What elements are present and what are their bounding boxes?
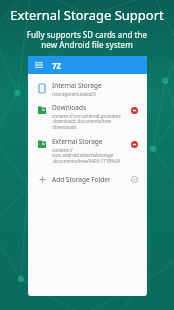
staticText: Fully supports SD cards and the new Andr…: [8, 29, 166, 50]
staticText: Internal Storage: [52, 81, 102, 90]
staticText: /storage/emulated/0: [52, 91, 96, 97]
staticText: 7Z: [52, 60, 62, 71]
button[interactable]: Add Storage Folder: [28, 168, 147, 189]
staticText: Add Storage Folder: [52, 175, 126, 184]
staticText: content://com.android.providers .downloa…: [52, 113, 121, 131]
staticText: content://com.android.externalstorage .d…: [52, 147, 126, 165]
button[interactable]: Help: [126, 173, 142, 185]
button[interactable]: Remove storage folder: [126, 137, 142, 151]
button[interactable]: Internal Storage: [28, 78, 147, 100]
button[interactable]: Remove storage folder: [126, 103, 142, 117]
staticText: External Storage Support: [6, 6, 168, 24]
button[interactable]: External Storage: [28, 134, 147, 168]
staticText: External Storage: [52, 137, 103, 146]
button[interactable]: Downloads: [28, 100, 147, 134]
button[interactable]: Open navigation menu: [33, 59, 45, 71]
staticText: Downloads: [52, 103, 87, 112]
